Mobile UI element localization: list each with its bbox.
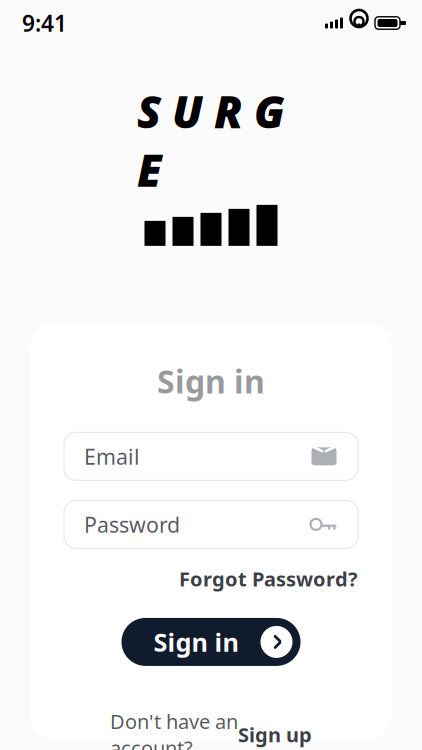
staticText: Forgot Password? xyxy=(179,565,358,592)
staticText: Password xyxy=(84,510,180,538)
staticText: Don't have an account? xyxy=(110,708,238,750)
staticText: Sign in xyxy=(153,625,238,659)
staticText: S U R G E xyxy=(137,82,285,199)
button[interactable]: Sign in xyxy=(121,618,300,666)
button[interactable]: Password xyxy=(64,500,358,548)
button[interactable]: Email xyxy=(64,432,358,480)
staticText: Sign up xyxy=(238,721,312,748)
staticText: Email xyxy=(84,442,140,470)
staticText: 9:41 xyxy=(22,8,67,38)
button[interactable]: Forgot Password? xyxy=(179,561,358,596)
button[interactable]: Don't have an account? xyxy=(110,708,312,750)
staticText: Sign in xyxy=(157,360,265,402)
